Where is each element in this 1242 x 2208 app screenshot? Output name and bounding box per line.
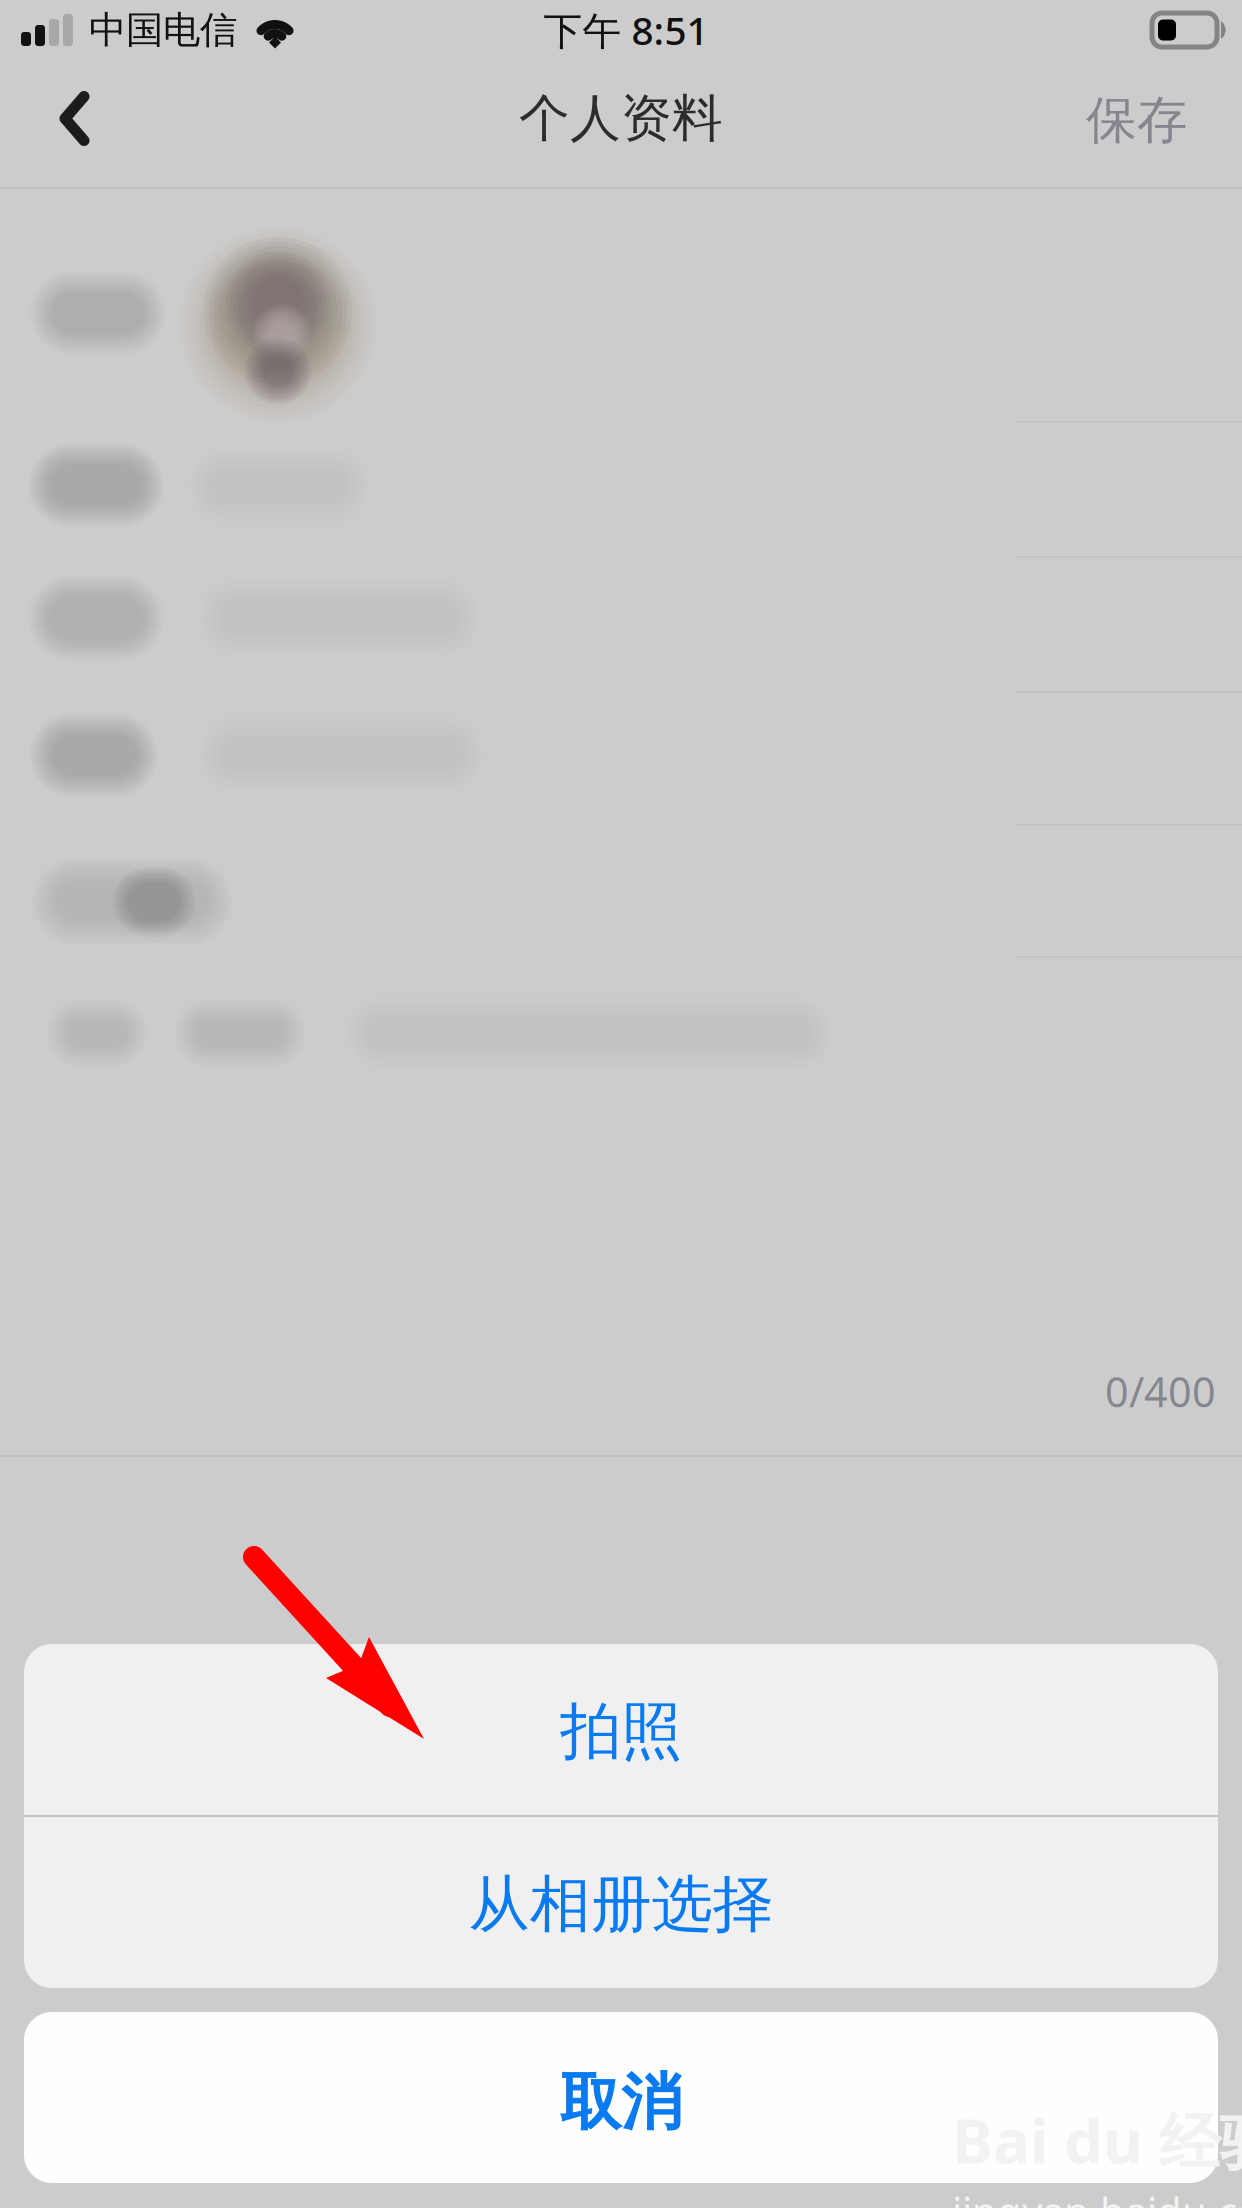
staticText: 个人资料 <box>519 87 723 150</box>
staticText: 下午 8:51 <box>543 4 708 56</box>
staticText: 从相册选择 <box>468 1866 773 1943</box>
button[interactable]: 拍照 <box>24 1644 1218 1815</box>
button[interactable]: 保存 <box>1032 60 1242 189</box>
staticText: 保存 <box>1086 89 1188 152</box>
staticText: Bai du 经验 <box>952 2098 1242 2182</box>
staticText: 拍照 <box>560 1693 682 1770</box>
staticText: 中国电信 <box>89 6 237 53</box>
staticText: 0/400 <box>1105 1363 1216 1419</box>
button[interactable]: 从相册选择 <box>24 1817 1218 1988</box>
button[interactable]: 返回 <box>0 60 210 189</box>
staticText: 取消 <box>560 2064 682 2141</box>
staticText: jingyan.baidu.com <box>952 2184 1242 2208</box>
button[interactable]: 取消 <box>24 2012 1218 2183</box>
